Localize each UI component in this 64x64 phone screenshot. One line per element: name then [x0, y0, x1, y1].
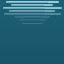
button[interactable]: Fifth item — [4, 13, 61, 15]
button[interactable]: Second item — [11, 4, 53, 6]
button[interactable]: Third item — [3, 7, 62, 9]
button[interactable]: First item — [6, 1, 59, 3]
button[interactable]: Sixth item — [14, 16, 50, 18]
button[interactable]: Fourth item — [9, 10, 55, 12]
